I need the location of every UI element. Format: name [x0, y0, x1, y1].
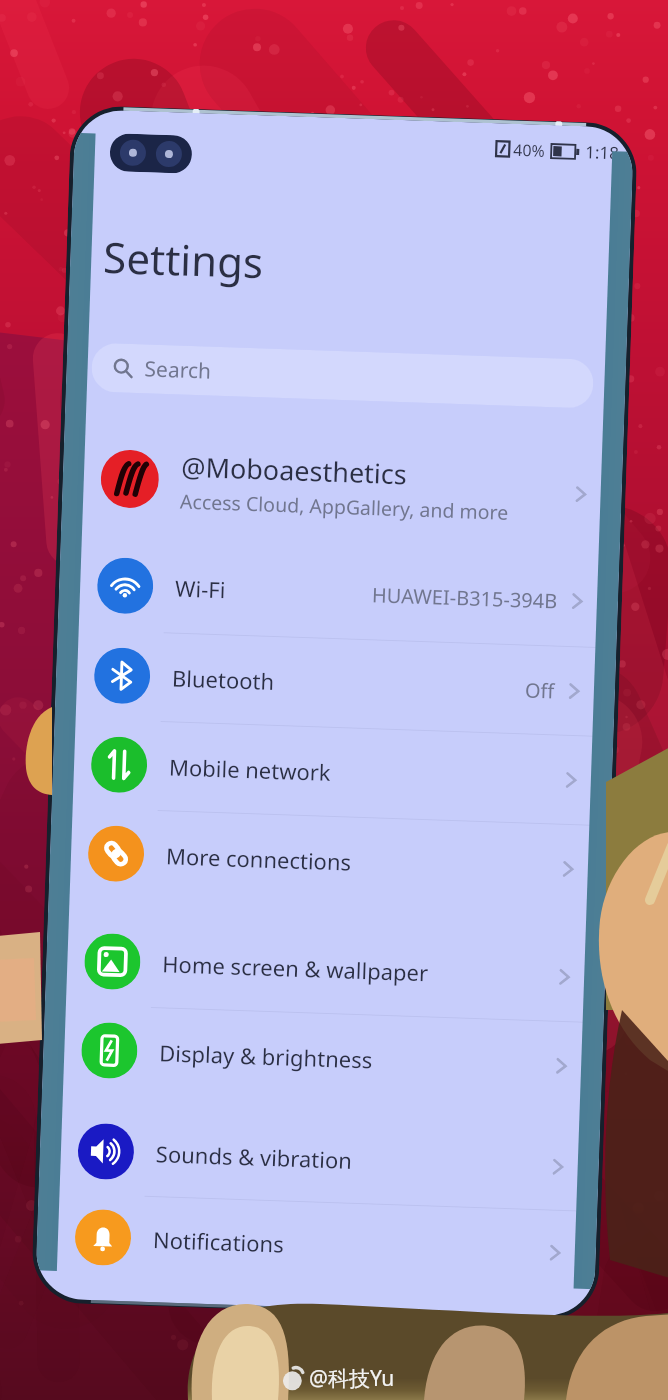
staticText: 1:18 — [585, 140, 620, 164]
button[interactable]: Home screen & wallpaper — [45, 915, 607, 1022]
button[interactable]: Display & brightness — [42, 1004, 604, 1110]
staticText: @科技Yu — [309, 1364, 395, 1393]
staticText: Sounds & vibration — [155, 1138, 547, 1181]
button[interactable]: More connections — [49, 807, 610, 914]
staticText: Mobile network — [169, 751, 560, 795]
staticText: Wi-Fi — [175, 572, 373, 609]
staticText: @Moboaesthetics — [181, 448, 408, 492]
staticText: Bluetooth — [172, 662, 525, 704]
button[interactable]: Sounds & vibration — [38, 1106, 600, 1211]
button[interactable]: Mobile network — [52, 718, 613, 825]
staticText: HUAWEI-B315-394B — [372, 581, 558, 614]
button[interactable]: @Moboaesthetics — [61, 427, 623, 546]
staticText: Settings — [102, 228, 264, 290]
staticText: Notifications — [152, 1224, 544, 1267]
button[interactable]: Notifications — [36, 1193, 597, 1296]
button[interactable]: Bluetooth — [55, 629, 616, 736]
staticText: Access Cloud, AppGallery, and more — [180, 488, 509, 526]
staticText: More connections — [165, 840, 557, 884]
staticText: Home screen & wallpaper — [162, 948, 554, 992]
staticText: Off — [524, 676, 555, 704]
staticText: 40% — [513, 139, 546, 162]
button[interactable]: Search — [91, 342, 594, 409]
staticText: Display & brightness — [159, 1037, 551, 1080]
staticText: Search — [144, 354, 212, 386]
button[interactable]: Wi-Fi — [58, 539, 619, 648]
